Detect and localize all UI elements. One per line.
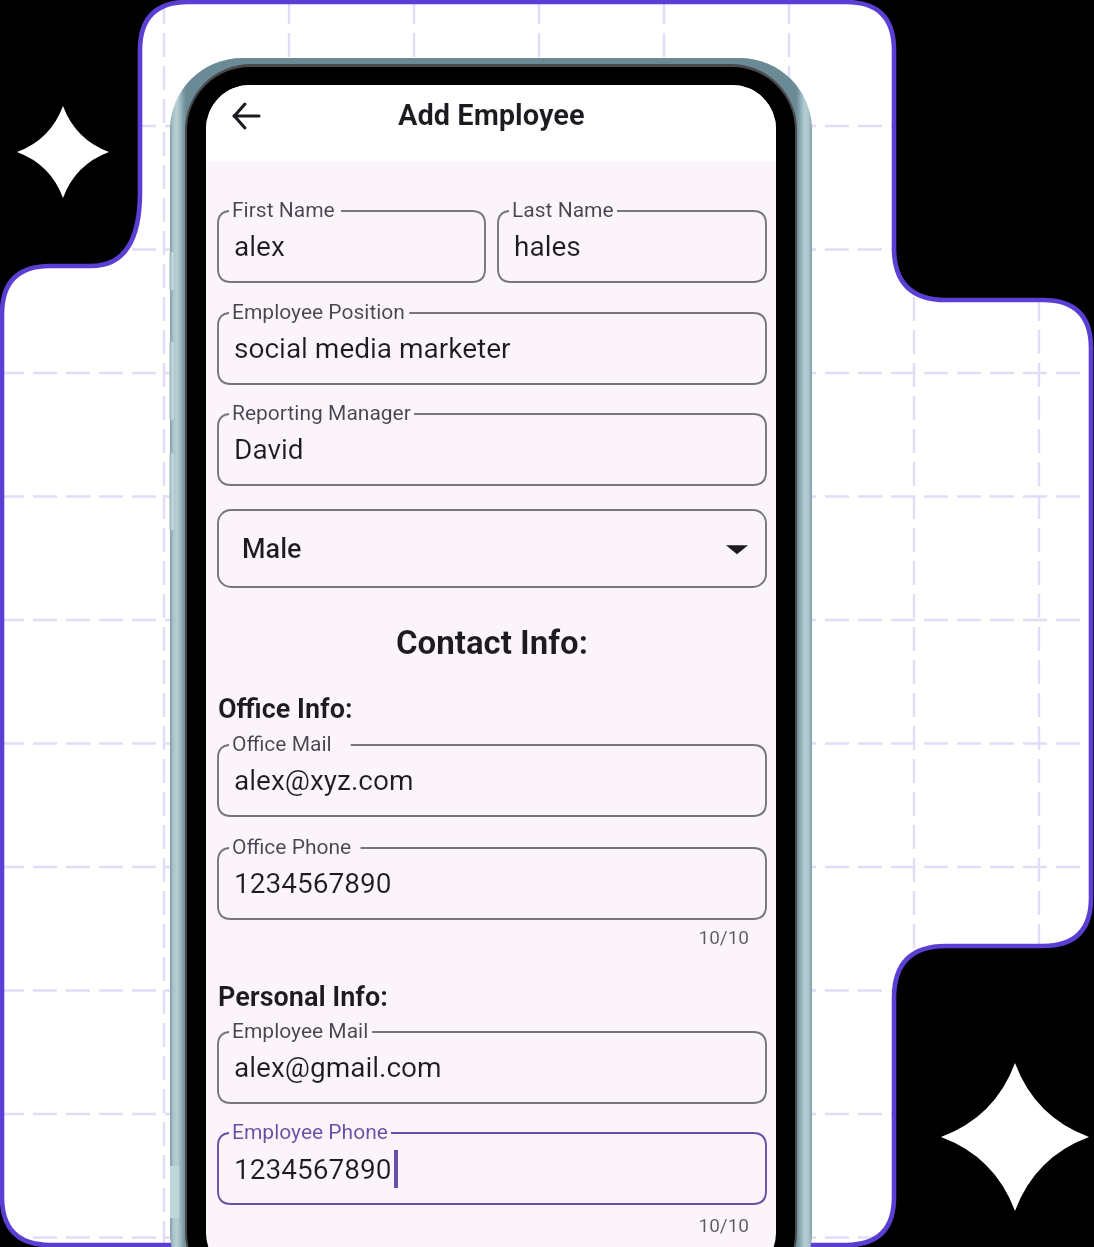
staticText: Personal Info: xyxy=(218,981,388,1013)
staticText: Office Phone xyxy=(232,835,352,860)
staticText: social media marketer xyxy=(234,332,511,365)
staticText: Employee Position xyxy=(232,300,405,325)
staticText: alex@gmail.com xyxy=(234,1051,442,1084)
staticText: alex@xyz.com xyxy=(234,764,414,797)
staticText: Employee Phone xyxy=(232,1120,388,1145)
staticText: Office Mail xyxy=(232,732,332,757)
staticText: Last Name xyxy=(512,198,614,223)
staticText: 10/10 xyxy=(218,926,749,948)
staticText: First Name xyxy=(232,198,335,223)
staticText: Office Info: xyxy=(218,693,353,725)
staticText: Add Employee xyxy=(398,98,585,132)
staticText: 1234567890 xyxy=(234,867,392,900)
staticText: 1234567890 xyxy=(234,1153,392,1186)
staticText: alex xyxy=(234,230,285,263)
staticText: 10/10 xyxy=(218,1214,749,1236)
other: Open dropdown xyxy=(726,538,748,560)
staticText: hales xyxy=(514,230,581,263)
staticText: Male xyxy=(242,533,302,565)
button[interactable]: Male xyxy=(218,510,766,587)
staticText: Reporting Manager xyxy=(232,401,411,426)
staticText: Contact Info: xyxy=(218,623,766,662)
staticText: Employee Mail xyxy=(232,1019,369,1044)
button[interactable]: Back xyxy=(220,90,272,142)
staticText: David xyxy=(234,433,304,466)
